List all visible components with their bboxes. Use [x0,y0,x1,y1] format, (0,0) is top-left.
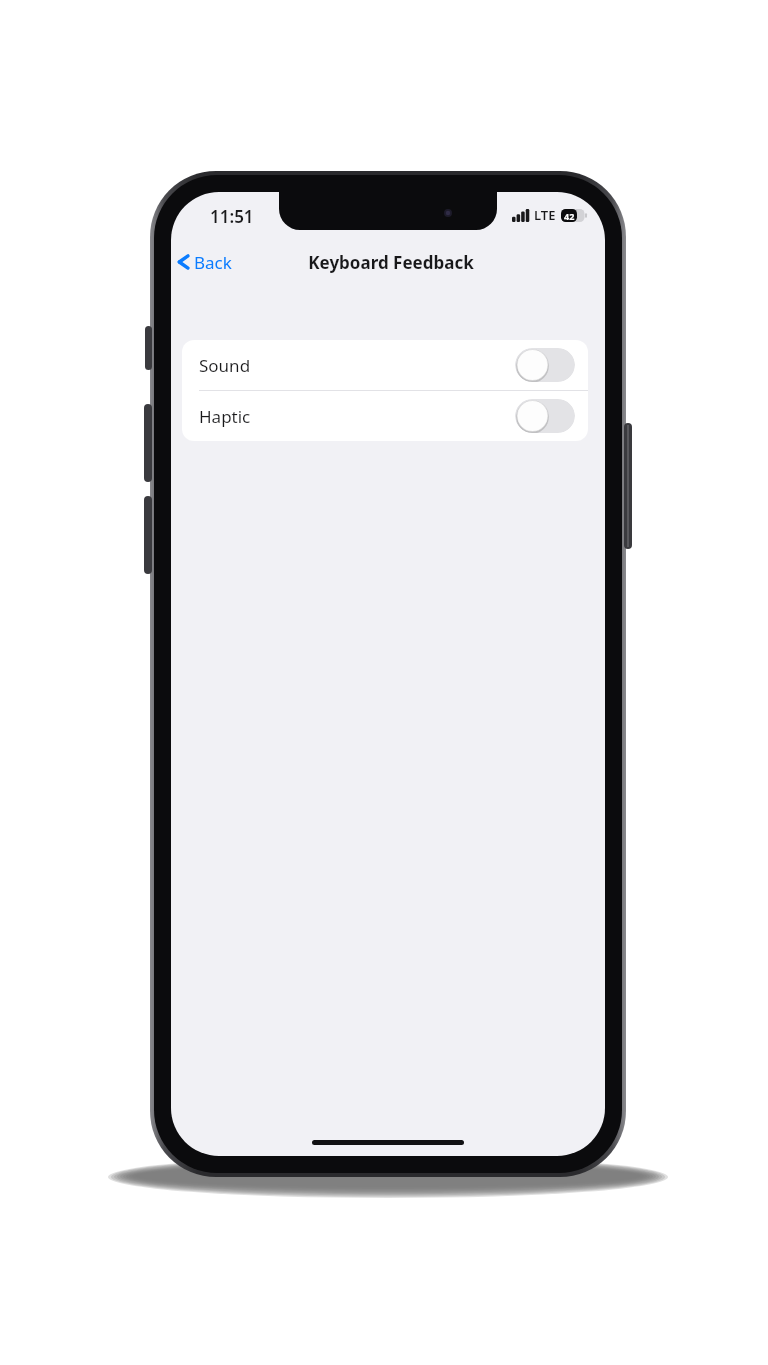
staticText: 42 [564,210,575,222]
button[interactable]: Sound [182,340,588,390]
staticText: Sound [199,354,251,377]
staticText: Back [194,251,232,274]
staticText: LTE [534,206,556,224]
staticText: Haptic [199,405,251,428]
button[interactable]: Haptic [182,391,588,441]
button[interactable]: Haptic toggle, off [515,399,575,433]
button[interactable]: Back [173,246,235,278]
staticText: 11:51 [210,205,254,228]
button[interactable]: Sound toggle, off [515,348,575,382]
staticText: Keyboard Feedback [308,251,474,274]
